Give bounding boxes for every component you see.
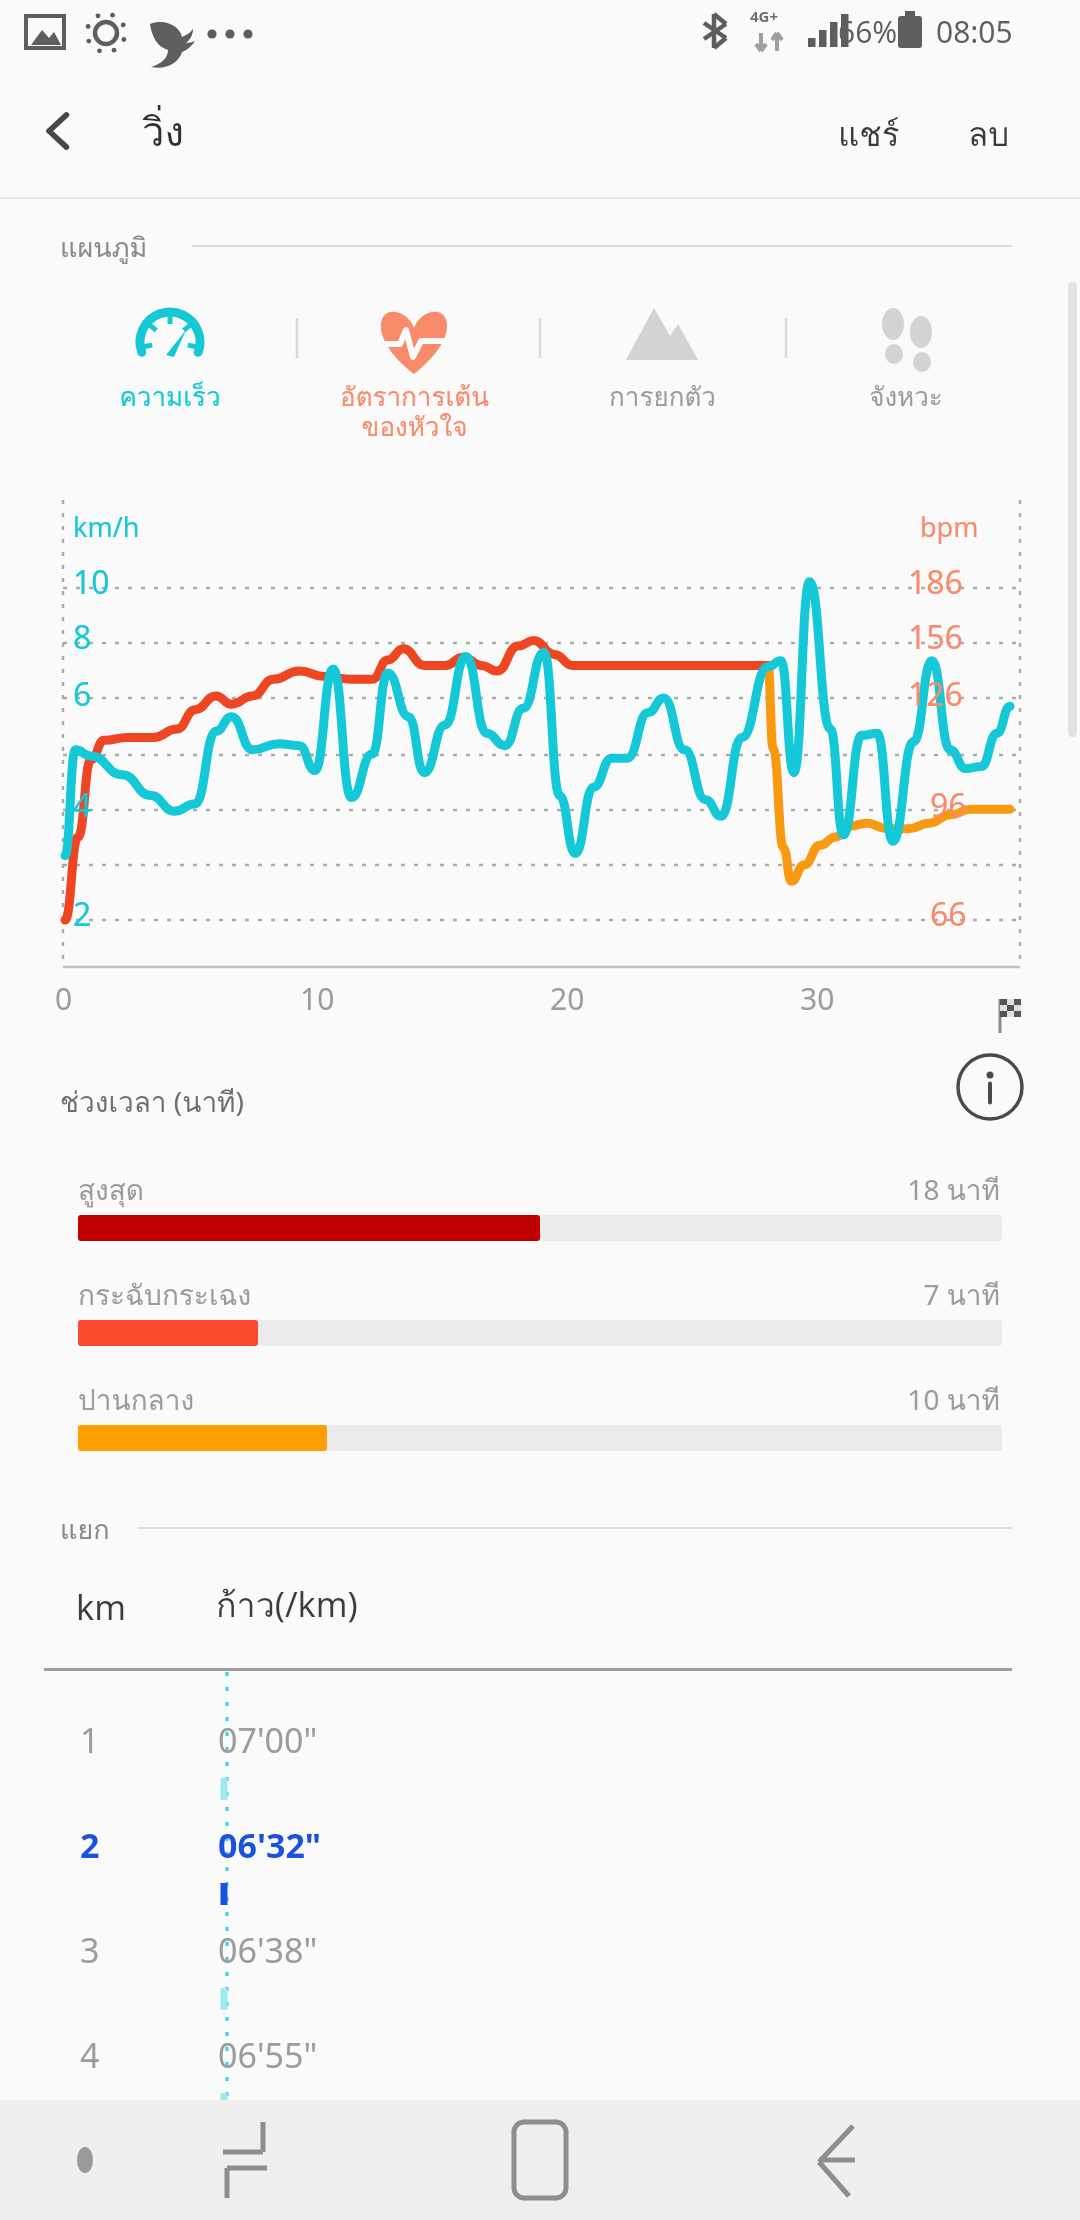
staticText: 2 bbox=[80, 1822, 100, 1868]
staticText: ก้าว(/km) bbox=[216, 1578, 358, 1632]
staticText: km bbox=[76, 1584, 126, 1630]
button[interactable]: อัตราการเต้น ของหัวใจ bbox=[294, 280, 534, 430]
staticText: 186 bbox=[908, 560, 963, 604]
button[interactable]: Back bbox=[28, 100, 90, 162]
staticText: 08:05 bbox=[936, 11, 1013, 52]
staticText: 2 bbox=[73, 892, 92, 936]
staticText: 96 bbox=[930, 783, 967, 827]
staticText: km/h bbox=[73, 508, 140, 545]
button[interactable]: สูงสุด bbox=[0, 1168, 1080, 1264]
staticText: วิ่ง bbox=[142, 100, 184, 164]
staticText: 4 bbox=[80, 2032, 100, 2078]
staticText: 3 bbox=[80, 1927, 100, 1973]
staticText: 1 bbox=[80, 1717, 100, 1763]
staticText: ความเร็ว bbox=[119, 376, 221, 417]
staticText: 06'38" bbox=[218, 1927, 318, 1973]
staticText: 4G+ bbox=[750, 6, 779, 26]
staticText: 6 bbox=[73, 672, 92, 716]
staticText: 4 bbox=[73, 783, 92, 827]
staticText: 0 bbox=[55, 978, 73, 1019]
staticText: สูงสุด bbox=[78, 1168, 145, 1213]
staticText: 10 bbox=[300, 978, 335, 1019]
staticText: กระฉับกระเฉง bbox=[78, 1273, 252, 1318]
staticText: 06'55" bbox=[218, 2032, 318, 2078]
button[interactable]: Back bbox=[760, 2100, 910, 2220]
button[interactable]: ลบ bbox=[952, 88, 1026, 180]
button[interactable]: Home bbox=[465, 2100, 615, 2220]
staticText: 20 bbox=[550, 978, 585, 1019]
staticText: 7 นาที bbox=[700, 1273, 1000, 1318]
staticText: 8 bbox=[73, 615, 92, 659]
button[interactable]: 1 bbox=[0, 1705, 1080, 1805]
staticText: ปานกลาง bbox=[78, 1378, 195, 1423]
staticText: แผนภูมิ bbox=[60, 226, 148, 269]
staticText: แยก bbox=[60, 1508, 110, 1551]
staticText: ช่วงเวลา (นาที) bbox=[60, 1080, 244, 1125]
staticText: 07'00" bbox=[218, 1717, 318, 1763]
button[interactable]: 2 bbox=[0, 1810, 1080, 1910]
button[interactable]: ปานกลาง bbox=[0, 1378, 1080, 1474]
staticText: 18 นาที bbox=[700, 1168, 1000, 1213]
staticText: 10 นาที bbox=[700, 1378, 1000, 1423]
button[interactable]: จังหวะ bbox=[786, 280, 1026, 430]
button[interactable]: กระฉับกระเฉง bbox=[0, 1273, 1080, 1369]
button[interactable]: แชร์ bbox=[822, 88, 916, 180]
staticText: 66% bbox=[838, 11, 898, 52]
staticText: 06'32" bbox=[218, 1822, 322, 1868]
staticText: การยกตัว bbox=[609, 376, 716, 417]
button[interactable]: 3 bbox=[0, 1915, 1080, 2015]
staticText: แชร์ bbox=[838, 108, 900, 160]
button[interactable]: ความเร็ว bbox=[50, 280, 290, 430]
staticText: 156 bbox=[908, 615, 963, 659]
button[interactable]: Recents bbox=[170, 2100, 320, 2220]
staticText: อัตราการเต้น ของหัวใจ bbox=[340, 376, 489, 447]
staticText: 30 bbox=[800, 978, 835, 1019]
staticText: 126 bbox=[908, 672, 963, 716]
staticText: ลบ bbox=[968, 108, 1010, 160]
staticText: จังหวะ bbox=[869, 376, 943, 417]
button[interactable]: การยกตัว bbox=[542, 280, 782, 430]
button[interactable]: 4 bbox=[0, 2020, 1080, 2120]
staticText: bpm bbox=[920, 508, 979, 545]
button[interactable]: Information bbox=[955, 1052, 1025, 1122]
staticText: 10 bbox=[73, 560, 110, 604]
staticText: 66 bbox=[930, 892, 967, 936]
